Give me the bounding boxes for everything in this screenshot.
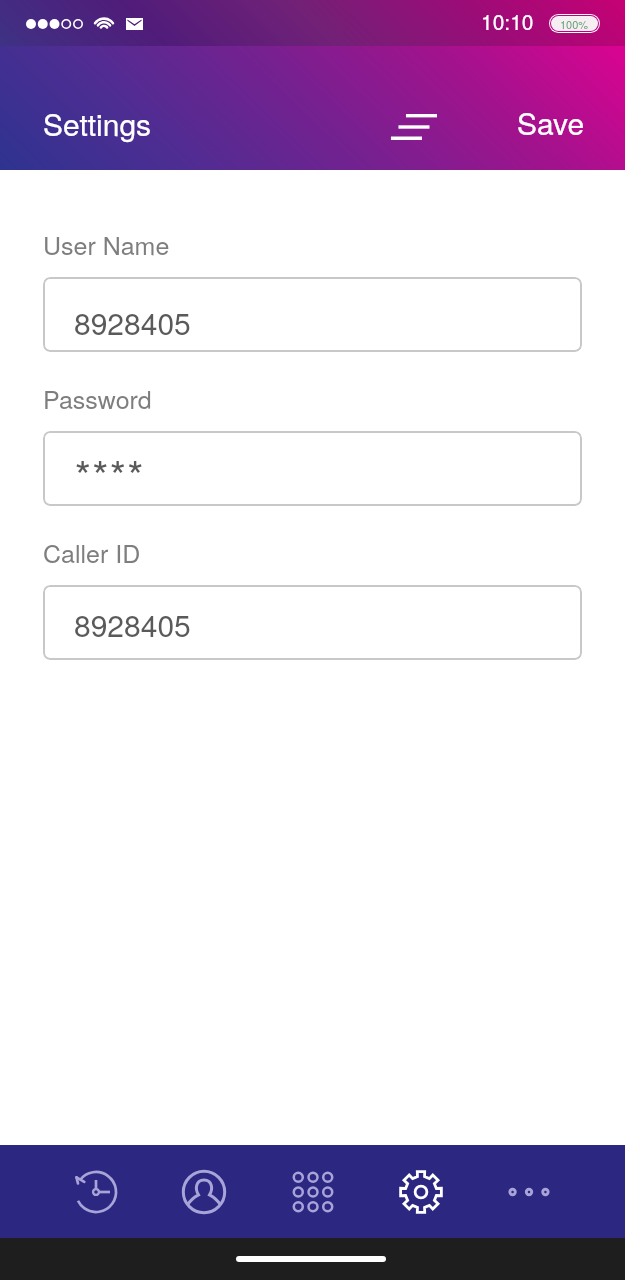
staticText: Caller ID (43, 534, 141, 570)
button[interactable]: More (486, 1145, 572, 1238)
staticText: Settings (43, 102, 152, 145)
staticText: User Name (43, 226, 170, 262)
staticText: 10:10 (481, 6, 534, 36)
button[interactable]: Recent calls (53, 1145, 139, 1238)
button[interactable]: ∗∗∗∗ (43, 431, 582, 506)
button[interactable]: Keypad (270, 1145, 356, 1238)
button[interactable]: Sort (382, 95, 446, 159)
button[interactable]: 8928405 (43, 585, 582, 660)
button[interactable]: Save (495, 87, 625, 160)
button[interactable]: Settings (378, 1145, 464, 1238)
staticText: ∗∗∗∗ (74, 436, 145, 486)
staticText: 8928405 (74, 603, 191, 646)
staticText: 8928405 (74, 301, 191, 344)
staticText: 100% (560, 16, 589, 31)
staticText: Password (43, 380, 152, 416)
button[interactable]: 8928405 (43, 277, 582, 352)
staticText: Save (517, 101, 585, 144)
button[interactable]: Contacts (161, 1145, 247, 1238)
